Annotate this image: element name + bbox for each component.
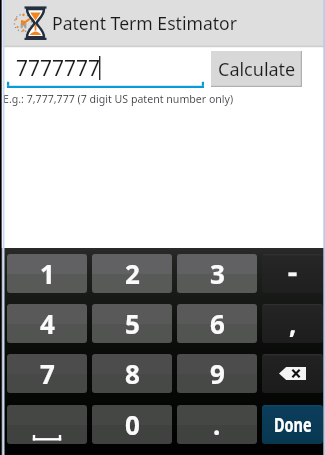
- staticText: 6: [210, 306, 225, 341]
- staticText: 2: [125, 256, 140, 291]
- staticText: 8: [125, 356, 140, 391]
- button[interactable]: 8: [92, 354, 172, 393]
- staticText: 9: [210, 356, 225, 391]
- button[interactable]: .: [177, 405, 257, 444]
- button[interactable]: 0: [92, 405, 172, 444]
- button[interactable]: 9: [177, 354, 257, 393]
- button[interactable]: Space: [7, 405, 87, 444]
- button[interactable]: Backspace: [262, 354, 323, 393]
- button[interactable]: Done: [262, 405, 323, 444]
- staticText: Calculate: [218, 57, 296, 82]
- button[interactable]: 6: [177, 304, 257, 343]
- button[interactable]: 4: [7, 304, 87, 343]
- staticText: ,: [289, 306, 297, 341]
- staticText: Patent Term Estimator: [52, 11, 238, 35]
- button[interactable]: 2: [92, 254, 172, 293]
- button[interactable]: 5: [92, 304, 172, 343]
- button[interactable]: ,: [262, 304, 323, 343]
- staticText: 7777777: [16, 54, 101, 83]
- staticText: 4: [40, 306, 55, 341]
- staticText: 3: [210, 256, 225, 291]
- button[interactable]: -: [262, 254, 323, 293]
- button[interactable]: Calculate: [211, 51, 302, 87]
- staticText: .: [213, 407, 221, 442]
- staticText: 0: [125, 407, 140, 442]
- button[interactable]: 1: [7, 254, 87, 293]
- staticText: 7: [40, 356, 55, 391]
- button[interactable]: 7: [7, 354, 87, 393]
- staticText: 1: [40, 256, 55, 291]
- staticText: 5: [125, 306, 140, 341]
- staticText: E.g.: 7,777,777 (7 digit US patent numbe…: [3, 92, 234, 106]
- button[interactable]: 3: [177, 254, 257, 293]
- staticText: Done: [274, 412, 312, 438]
